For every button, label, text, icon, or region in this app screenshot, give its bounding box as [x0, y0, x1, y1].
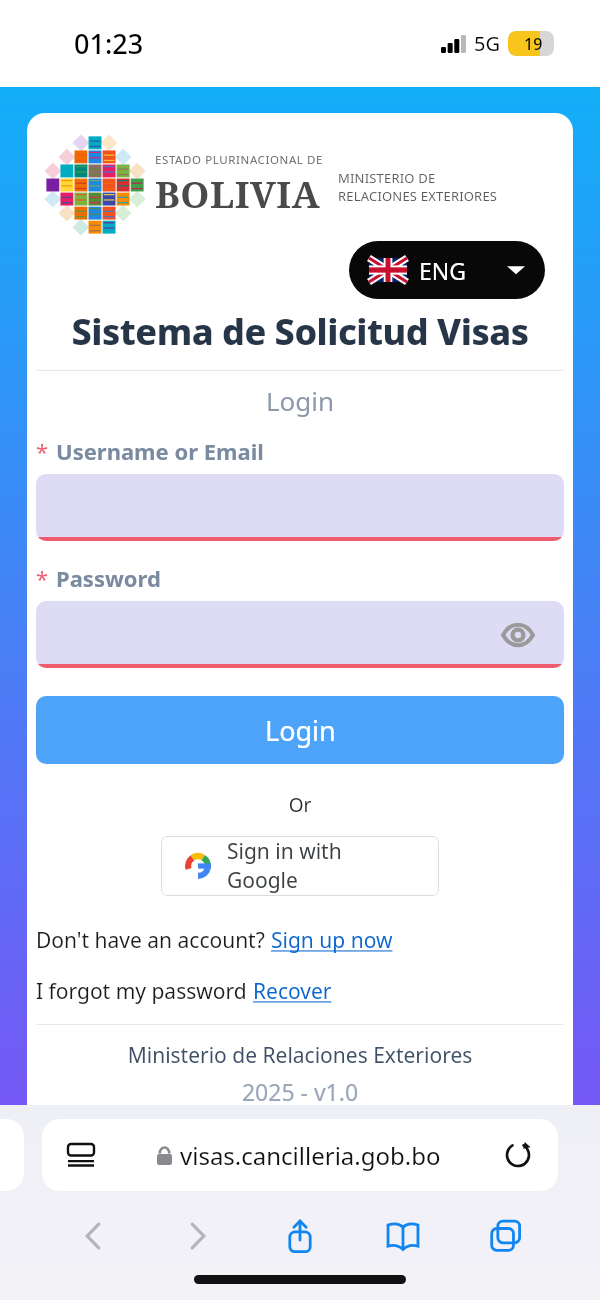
staticText: BOLIVIA: [155, 168, 321, 218]
button[interactable]: Recover: [253, 977, 332, 1006]
staticText: Or: [27, 792, 573, 818]
staticText: I forgot my password: [36, 977, 253, 1006]
staticText: 01:23: [74, 25, 144, 62]
button[interactable]: Share: [271, 1207, 329, 1265]
staticText: *: [36, 563, 49, 593]
staticText: Don't have an account?: [36, 926, 271, 955]
staticText: Sign up now: [271, 926, 393, 955]
staticText: RELACIONES EXTERIORES: [338, 187, 498, 205]
button[interactable]: Forward: [168, 1207, 226, 1265]
staticText: *: [36, 436, 49, 466]
staticText: visas.cancilleria.gob.bo: [180, 1139, 441, 1172]
button[interactable]: Login: [36, 696, 564, 764]
button[interactable]: Page settings: [66, 1140, 96, 1170]
button[interactable]: Sign in with Google: [161, 836, 439, 896]
button[interactable]: Reload: [502, 1139, 534, 1171]
button[interactable]: ENG: [349, 241, 545, 299]
staticText: Sign in with Google: [227, 837, 415, 895]
staticText: Sistema de Solicitud Visas: [27, 307, 573, 356]
button[interactable]: Bookmarks: [374, 1207, 432, 1265]
staticText: ENG: [419, 255, 467, 286]
button[interactable]: Page settings: [42, 1119, 558, 1191]
staticText: MINISTERIO DE: [338, 169, 436, 187]
staticText: Password: [56, 563, 161, 593]
staticText: Ministerio de Relaciones Exteriores: [27, 1041, 573, 1070]
button[interactable]: Sign up now: [271, 926, 393, 955]
button[interactable]: Show password: [36, 601, 564, 668]
staticText: Username or Email: [56, 436, 264, 466]
button[interactable]: Back: [65, 1207, 123, 1265]
staticText: ESTADO PLURINACIONAL DE: [155, 152, 324, 168]
staticText: 2025 - v1.0: [27, 1076, 573, 1105]
button[interactable]: [36, 474, 564, 541]
staticText: 19: [524, 33, 543, 55]
button[interactable]: Show password: [500, 617, 536, 653]
staticText: Recover: [253, 977, 332, 1006]
staticText: 5G: [474, 30, 500, 57]
staticText: Login: [27, 383, 573, 418]
staticText: Login: [265, 712, 336, 749]
button[interactable]: Tabs: [477, 1207, 535, 1265]
